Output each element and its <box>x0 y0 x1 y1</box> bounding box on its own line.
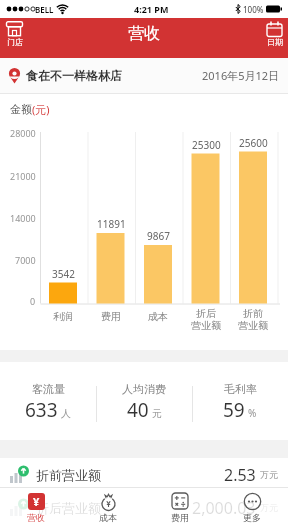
button[interactable]: 毛利率 <box>192 362 288 423</box>
staticText: 2016年5月12日 <box>202 68 280 83</box>
button[interactable]: 日期 <box>266 21 283 47</box>
button[interactable]: 成本 <box>72 487 144 527</box>
staticText: 折前 营业额 <box>238 307 268 332</box>
staticText: 3542 <box>52 267 75 281</box>
staticText: ¥ <box>33 494 40 509</box>
staticText: 万元 <box>260 502 278 513</box>
staticText: 门店 <box>7 37 23 47</box>
button[interactable]: 更多 <box>216 487 288 527</box>
staticText: 21000 <box>10 170 36 182</box>
button[interactable]: 门店 <box>5 21 24 47</box>
button[interactable]: 折前营业额 <box>0 458 288 487</box>
staticText: 万元 <box>260 469 278 480</box>
staticText: 40 <box>127 397 149 423</box>
staticText: 25300 <box>192 138 221 152</box>
staticText: 客流量 <box>32 382 65 396</box>
button[interactable]: 食在不一样格林店 <box>0 58 288 94</box>
button[interactable]: 客流量 <box>0 362 96 423</box>
staticText: 费用 <box>101 310 121 323</box>
staticText: 人均消费 <box>122 382 166 396</box>
button[interactable]: 费用 <box>144 487 216 527</box>
staticText: 100% <box>243 4 264 15</box>
staticText: 毛利率 <box>224 382 257 396</box>
staticText: 7000 <box>15 254 36 266</box>
staticText: 折前营业额 <box>36 467 101 483</box>
staticText: 4:21 PM <box>134 3 169 15</box>
staticText: 元 <box>152 407 162 420</box>
staticText: 14000 <box>10 212 36 224</box>
button[interactable]: ¥ <box>0 487 72 527</box>
staticText: 9867 <box>147 229 170 243</box>
button[interactable]: 人均消费 <box>96 362 192 423</box>
staticText: 11891 <box>97 217 126 231</box>
staticText: 折后营业额 <box>36 500 101 516</box>
staticText: 25600 <box>239 136 268 150</box>
staticText: 人 <box>61 407 71 420</box>
staticText: 日期 <box>267 37 283 47</box>
staticText: 营收 <box>128 24 160 44</box>
staticText: 0 <box>30 295 36 307</box>
staticText: 食在不一样格林店 <box>26 68 122 83</box>
staticText: 成本 <box>148 310 168 323</box>
staticText: BELL <box>35 4 54 15</box>
staticText: 营收 <box>27 512 45 523</box>
staticText: 更多 <box>243 512 261 523</box>
staticText: 2.53 <box>224 464 256 486</box>
button[interactable]: 折后营业额 <box>0 488 288 527</box>
staticText: % <box>248 406 257 420</box>
staticText: 633 <box>25 397 58 423</box>
staticText: 利润 <box>53 310 73 323</box>
staticText: 2,000.03 <box>192 497 256 519</box>
staticText: 费用 <box>171 512 189 523</box>
staticText: 折后 营业额 <box>191 307 221 332</box>
staticText: 59 <box>223 397 245 423</box>
staticText: 28000 <box>10 127 36 139</box>
staticText: 金额 <box>10 102 32 116</box>
staticText: 成本 <box>99 512 117 523</box>
staticText: (元) <box>32 102 50 117</box>
